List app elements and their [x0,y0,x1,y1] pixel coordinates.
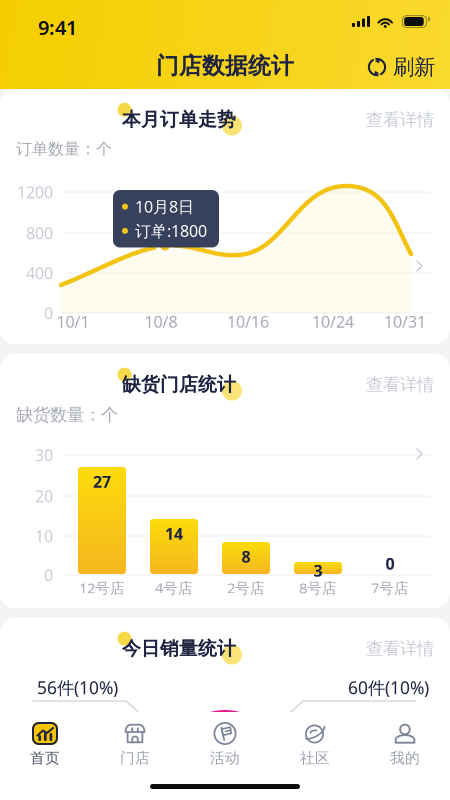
staticText: 60件(10%) [348,676,429,699]
staticText: 0 [385,553,394,574]
staticText: 4号店 [155,578,193,597]
staticText: 门店 [120,749,150,767]
staticText: 首页 [30,749,60,767]
staticText: 10/16 [227,311,269,332]
staticText: 社区 [300,749,330,767]
staticText: 缺货数量：个 [16,404,118,425]
staticText: 查看详情 [366,109,434,130]
button[interactable]: 查看详情 [358,368,442,401]
button[interactable]: 活动 [180,712,270,776]
staticText: 56件(10%) [37,676,118,699]
staticText: 400 [26,262,53,284]
staticText: 我的 [390,749,420,767]
staticText: 27 [93,471,111,492]
staticText: 30 [35,444,53,466]
staticText: 10/31 [384,311,426,332]
staticText: 本月订单走势 [122,108,236,131]
staticText: 今日销量统计 [122,637,236,660]
staticText: 10月8日 [135,196,194,217]
staticText: 门店数据统计 [156,52,294,80]
staticText: 20 [35,485,53,507]
button[interactable]: 门店 [90,712,180,776]
button[interactable]: 社区 [270,712,360,776]
staticText: 10 [35,525,53,547]
staticText: 9:41 [38,14,77,41]
button[interactable]: 查看详情 [358,632,442,665]
button[interactable]: 查看详情 [358,103,442,136]
staticText: 查看详情 [366,638,434,659]
staticText: 10/1 [56,311,89,332]
staticText: 订单数量：个 [16,139,112,159]
staticText: 10/24 [312,311,354,332]
button[interactable]: 刷新 [362,51,439,83]
staticText: 0 [44,302,53,324]
staticText: 1200 [17,181,53,203]
staticText: 10/8 [144,311,177,332]
staticText: 8号店 [299,578,337,597]
staticText: 2号店 [227,578,265,597]
staticText: 0 [44,564,53,586]
staticText: 活动 [210,749,240,767]
staticText: 查看详情 [366,374,434,395]
button[interactable]: 我的 [360,712,450,776]
staticText: 14 [165,523,183,544]
button[interactable]: 首页 [0,712,90,776]
staticText: 7号店 [371,578,409,597]
staticText: 800 [26,222,53,244]
staticText: 3 [313,560,322,581]
staticText: 8 [241,546,250,567]
staticText: 订单:1800 [135,220,207,241]
staticText: 缺货门店统计 [122,373,236,396]
staticText: 12号店 [79,578,125,597]
staticText: 刷新 [393,54,435,80]
